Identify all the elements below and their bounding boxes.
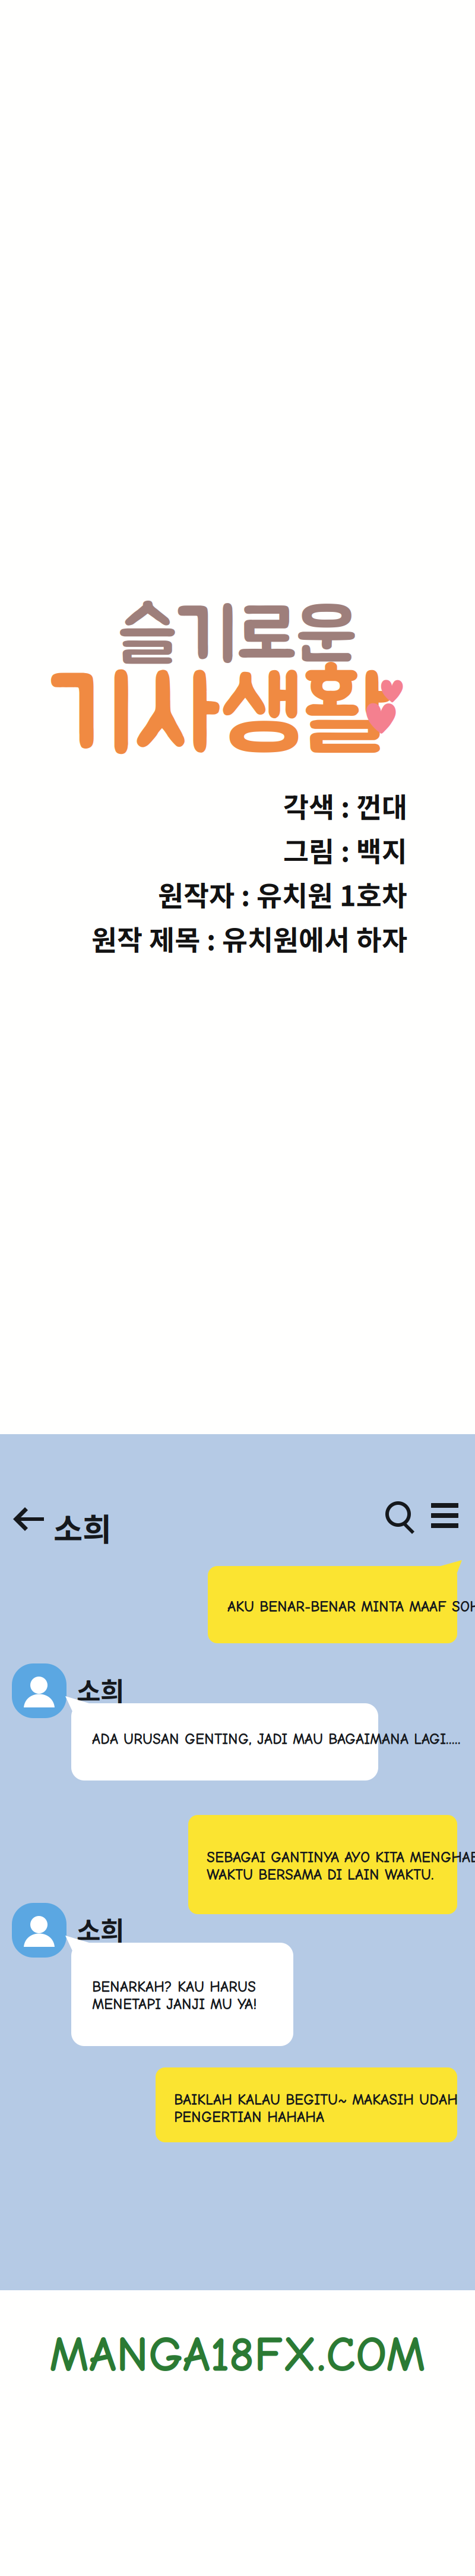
staticText: ♥ [363, 700, 399, 743]
staticText: AKU BENAR-BENAR MINTA MAAF SOHEE. [227, 1598, 475, 1615]
button[interactable]: Menu [431, 1503, 458, 1528]
staticText: BAIKLAH KALAU BEGITU~ MAKASIH UDAH PENGE… [174, 2091, 458, 2126]
staticText: 원작자 : 유치원 1호차 [158, 874, 407, 914]
staticText: 소희 [77, 1671, 124, 1708]
staticText: BENARKAH? KAU HARUS MENETAPI JANJI MU YA… [92, 1978, 257, 2013]
staticText: 소희 [53, 1504, 112, 1550]
button[interactable]: Back [13, 1507, 45, 1531]
staticText: 소희 [77, 1910, 124, 1948]
staticText: ADA URUSAN GENTING, JADI MAU BAGAIMANA L… [92, 1731, 461, 1748]
staticText: ♥ [379, 677, 405, 709]
staticText: SEBAGAI GANTINYA AYO KITA MENGHABISKAN W… [207, 1849, 475, 1883]
staticText: 각색 : 껀대 [283, 785, 407, 826]
staticText: 슬기로운 [118, 601, 357, 674]
button[interactable]: Search [387, 1503, 417, 1534]
staticText: MANGA18FX.COM [49, 2326, 426, 2383]
staticText: 기사생활 [50, 667, 390, 770]
staticText: 원작 제목 : 유치원에서 하자 [91, 918, 407, 958]
staticText: 그림 : 백지 [283, 830, 407, 870]
